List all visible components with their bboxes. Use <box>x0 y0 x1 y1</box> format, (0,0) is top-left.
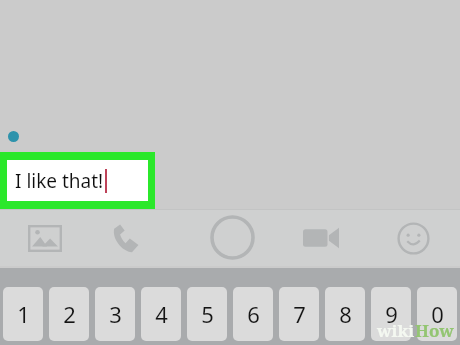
button[interactable]: 0 <box>417 287 457 341</box>
button[interactable]: 2 <box>49 287 89 341</box>
button[interactable]: 3 <box>95 287 135 341</box>
button[interactable]: 9 <box>371 287 411 341</box>
staticText: 1 <box>17 299 30 329</box>
button[interactable]: I like that! <box>0 152 155 209</box>
button[interactable]: Camera <box>207 212 258 263</box>
staticText: 9 <box>385 299 398 329</box>
button[interactable]: 1 <box>3 287 43 341</box>
staticText: 8 <box>339 299 352 329</box>
button[interactable]: 4 <box>141 287 181 341</box>
button[interactable]: 7 <box>279 287 319 341</box>
button[interactable]: Video call <box>299 223 343 253</box>
staticText: 5 <box>201 299 214 329</box>
button[interactable]: Emoji <box>393 218 433 258</box>
staticText: 6 <box>247 299 260 329</box>
button[interactable]: Gallery <box>23 222 67 254</box>
staticText: 3 <box>109 299 122 329</box>
button[interactable]: 6 <box>233 287 273 341</box>
staticText: 7 <box>293 299 306 329</box>
button[interactable]: 5 <box>187 287 227 341</box>
staticText: I like that! <box>15 168 104 194</box>
staticText: wiki <box>377 319 415 342</box>
button[interactable]: 8 <box>325 287 365 341</box>
staticText: 0 <box>431 299 444 329</box>
staticText: 4 <box>155 299 168 329</box>
staticText: How <box>415 319 454 342</box>
button[interactable]: Call <box>104 220 146 256</box>
staticText: 2 <box>63 299 76 329</box>
